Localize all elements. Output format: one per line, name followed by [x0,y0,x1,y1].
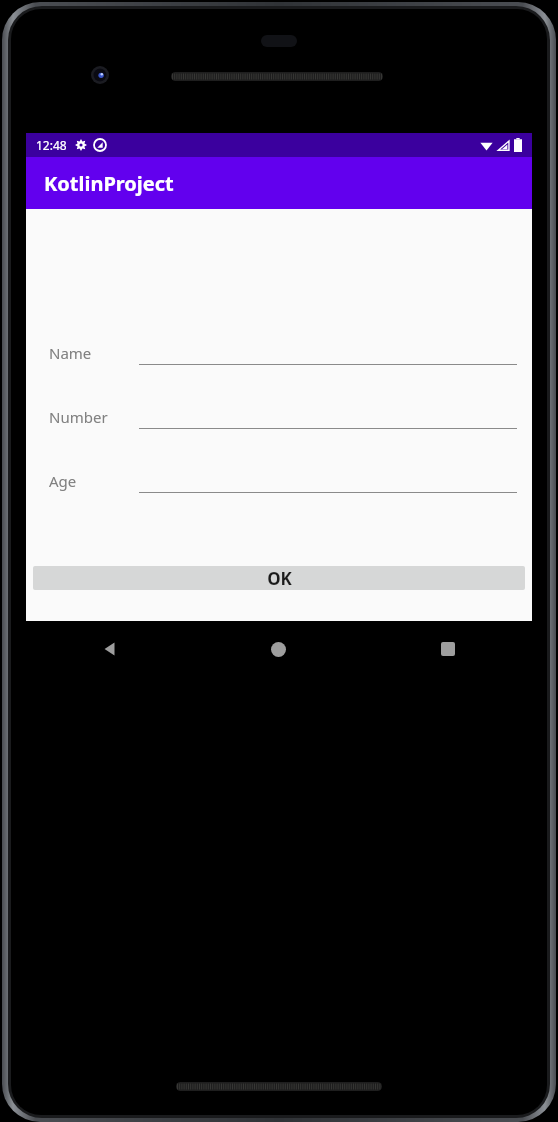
button[interactable]: Recent apps [363,621,532,677]
staticText: Number [49,407,108,427]
button[interactable]: Name [26,341,532,365]
button[interactable]: Home [194,621,363,677]
button[interactable]: Back [26,621,194,677]
button[interactable]: Number [26,405,532,429]
staticText: Age [49,471,77,491]
staticText: 12:48 [36,137,67,153]
staticText: KotlinProject [44,170,174,197]
button[interactable]: OK [33,566,525,590]
button[interactable]: Age [26,469,532,493]
staticText: Name [49,343,92,363]
staticText: OK [267,567,292,590]
